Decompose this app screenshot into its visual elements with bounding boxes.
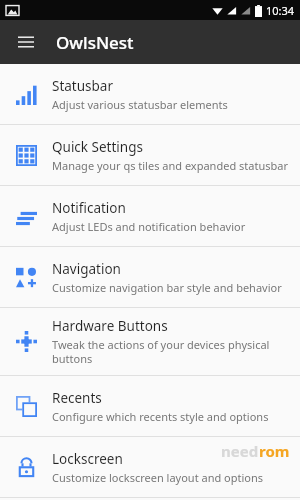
staticText: Navigation	[52, 260, 121, 278]
staticText: need	[221, 441, 259, 461]
staticText: Adjust various statusbar elements	[52, 97, 228, 112]
button[interactable]: Recents	[0, 376, 300, 436]
staticText: Tweak the actions of your devices physic…	[52, 337, 290, 366]
staticText: 10:34	[266, 3, 295, 18]
button[interactable]: Open navigation menu	[8, 24, 44, 60]
button[interactable]: Quick Settings	[0, 125, 300, 185]
button[interactable]: Lockscreen	[0, 437, 300, 497]
staticText: OwlsNest	[56, 31, 134, 54]
button[interactable]: Hardware Buttons	[0, 308, 300, 375]
staticText: Configure which recents style and option…	[52, 409, 269, 424]
staticText: Notification	[52, 199, 126, 217]
staticText: Hardware Buttons	[52, 317, 168, 335]
staticText: Statusbar	[52, 77, 113, 95]
button[interactable]: Navigation	[0, 247, 300, 307]
staticText: Quick Settings	[52, 138, 143, 156]
button[interactable]: Statusbar	[0, 64, 300, 124]
staticText: Manage your qs tiles and expanded status…	[52, 158, 288, 173]
staticText: rom	[259, 441, 290, 461]
button[interactable]: Notification	[0, 186, 300, 246]
staticText: Adjust LEDs and notification behavior	[52, 219, 246, 234]
staticText: Customize lockscreen layout and options	[52, 470, 264, 485]
staticText: Recents	[52, 389, 102, 407]
staticText: Customize navigation bar style and behav…	[52, 280, 282, 295]
staticText: Lockscreen	[52, 450, 123, 468]
